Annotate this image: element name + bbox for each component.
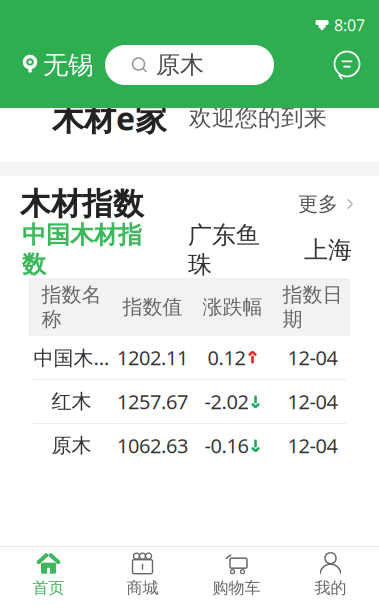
- staticText: -0.16: [204, 432, 248, 459]
- staticText: 指数值: [122, 295, 182, 319]
- button[interactable]: 我的: [283, 549, 377, 601]
- staticText: 指数日 期: [282, 282, 342, 331]
- staticText: 原木: [51, 433, 91, 458]
- staticText: 12-04: [287, 432, 337, 459]
- staticText: 更多: [298, 192, 338, 216]
- staticText: 8:07: [334, 14, 365, 36]
- staticText: 我的: [314, 578, 346, 598]
- staticText: 指数名 称: [41, 282, 101, 331]
- button[interactable]: 中国木…: [28, 336, 350, 380]
- button[interactable]: 原木: [105, 45, 274, 85]
- staticText: 木材指数: [20, 185, 144, 223]
- staticText: 0.12: [207, 344, 245, 371]
- staticText: 欢迎您的到来: [189, 104, 327, 132]
- button[interactable]: 红木: [28, 380, 350, 424]
- staticText: 首页: [32, 578, 64, 598]
- staticText: 1202.11: [117, 344, 188, 371]
- staticText: 涨跌幅: [202, 295, 262, 319]
- staticText: 商城: [126, 578, 158, 598]
- button[interactable]: 上海: [304, 235, 352, 275]
- button[interactable]: 购物车: [189, 549, 283, 601]
- button[interactable]: 更多: [294, 184, 359, 224]
- staticText: -2.02: [204, 388, 248, 415]
- button[interactable]: 消息: [325, 43, 369, 87]
- staticText: 12-04: [287, 344, 337, 371]
- staticText: 12-04: [287, 388, 337, 415]
- button[interactable]: 广东鱼珠: [182, 220, 266, 289]
- button[interactable]: 中国木材指数: [22, 220, 142, 290]
- button[interactable]: 首页: [1, 549, 95, 601]
- button[interactable]: 原木: [28, 424, 350, 467]
- button[interactable]: 无锡: [0, 43, 93, 87]
- staticText: 广东鱼珠: [188, 220, 260, 279]
- staticText: 上海: [304, 235, 352, 265]
- staticText: 购物车: [212, 578, 260, 598]
- staticText: 1062.63: [117, 432, 188, 459]
- staticText: 红木: [51, 389, 91, 414]
- staticText: 无锡: [43, 49, 93, 80]
- staticText: 中国木材指数: [22, 220, 142, 279]
- staticText: 原木: [156, 50, 204, 80]
- staticText: 木材e家: [52, 97, 167, 139]
- staticText: 1257.67: [117, 388, 188, 415]
- button[interactable]: 商城: [95, 549, 189, 601]
- staticText: 中国木…: [33, 344, 109, 371]
